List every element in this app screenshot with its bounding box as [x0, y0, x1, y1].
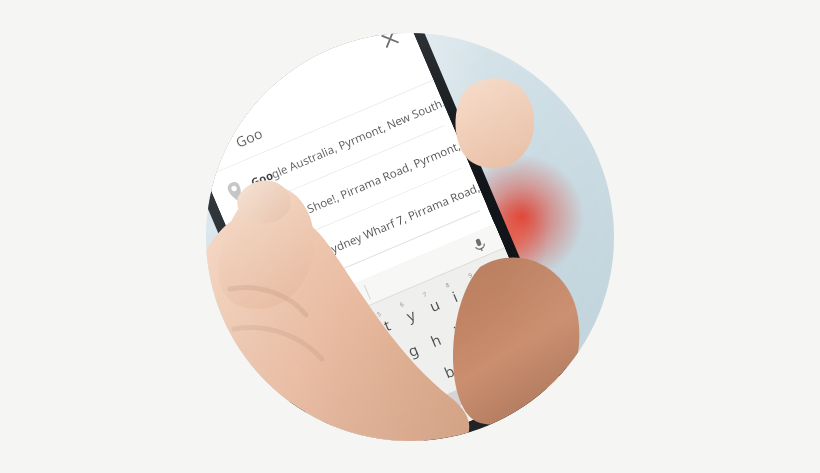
button[interactable]: Photo of a hand holding a phone showing … — [0, 0, 820, 473]
